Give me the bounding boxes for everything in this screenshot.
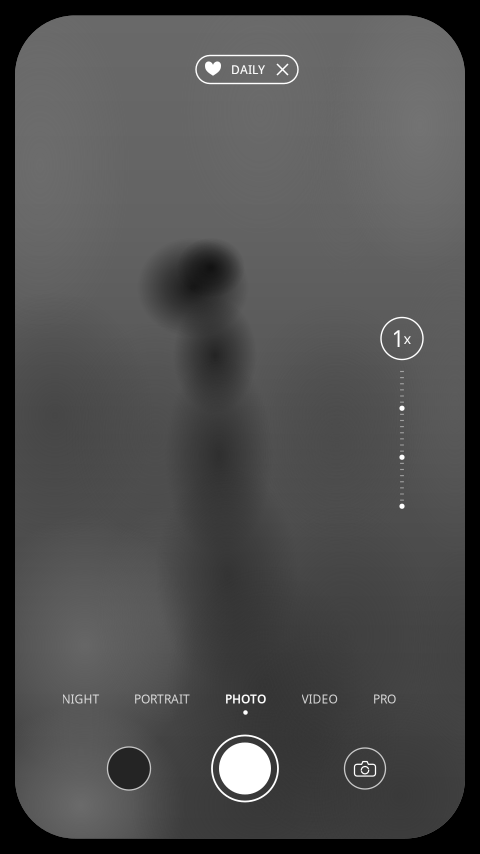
staticText: DAILY	[231, 61, 265, 77]
staticText: PHOTO	[225, 691, 266, 707]
button[interactable]: VIDEO	[283, 688, 355, 718]
staticText: NIGHT	[61, 691, 99, 707]
button[interactable]: Take photo	[210, 733, 280, 803]
button[interactable]: DAILY	[196, 55, 298, 83]
button[interactable]: Photo library	[107, 747, 150, 790]
staticText: VIDEO	[301, 691, 337, 707]
button[interactable]: Zoom 1x	[381, 317, 423, 359]
button[interactable]: Switch camera	[344, 748, 385, 789]
staticText: PORTRAIT	[134, 691, 190, 707]
button[interactable]: NIGHT	[44, 688, 116, 718]
staticText: 1	[391, 323, 404, 353]
button[interactable]: PHOTO	[207, 688, 283, 718]
staticText: x	[403, 329, 411, 348]
button[interactable]: PORTRAIT	[116, 688, 207, 718]
staticText: PRO	[373, 691, 396, 707]
button[interactable]: PRO	[355, 688, 413, 718]
